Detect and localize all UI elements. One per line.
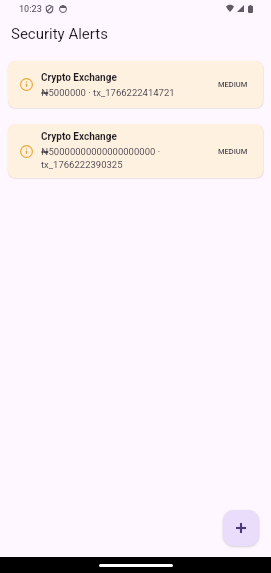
button[interactable]: Crypto Exchange (8, 124, 263, 178)
button[interactable]: Crypto Exchange (8, 61, 263, 108)
button[interactable]: Add alert (223, 510, 259, 546)
staticText: Crypto Exchange (41, 131, 117, 143)
staticText: MEDIUM (218, 80, 248, 89)
staticText: 10:23 (19, 4, 42, 15)
staticText: ₦50000000000000000000 · tx_1766222390325 (41, 146, 213, 171)
staticText: ₦5000000 · tx_1766222414721 (41, 87, 175, 98)
staticText: Security Alerts (11, 25, 108, 43)
staticText: MEDIUM (218, 147, 248, 156)
staticText: Crypto Exchange (41, 72, 117, 84)
